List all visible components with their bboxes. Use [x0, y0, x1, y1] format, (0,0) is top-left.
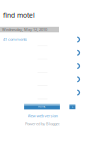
- staticText: View web version: [27, 113, 57, 118]
- staticText: Home: [38, 105, 46, 108]
- button[interactable]: Home: [24, 104, 60, 109]
- button[interactable]: [0, 46, 85, 60]
- staticText: Powered by Blogger.: [25, 121, 60, 126]
- staticText: 41 comments: [3, 37, 27, 42]
- staticText: ›: [72, 104, 73, 109]
- button[interactable]: View web version: [27, 113, 57, 118]
- staticText: Wednesday, May 12, 2010: [2, 27, 47, 32]
- button[interactable]: Next page: [69, 104, 75, 109]
- button[interactable]: [0, 59, 85, 73]
- button[interactable]: [0, 86, 85, 99]
- staticText: find motel: [3, 11, 35, 20]
- button[interactable]: 41 comments: [0, 33, 85, 46]
- button[interactable]: [0, 73, 85, 86]
